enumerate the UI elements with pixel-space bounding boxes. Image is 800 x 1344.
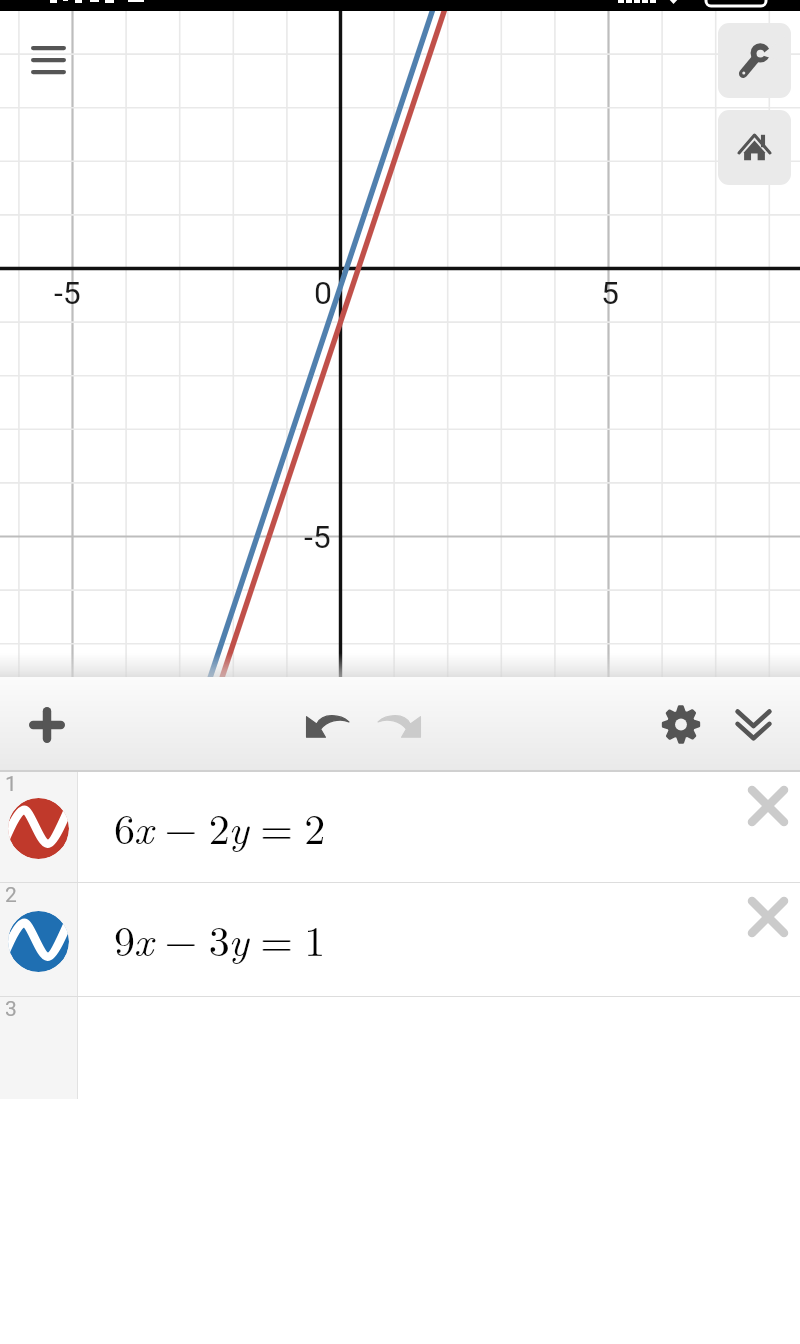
staticText: 0 xyxy=(314,274,332,312)
staticText: -5 xyxy=(54,274,81,312)
staticText: 6x − 2y = 2 xyxy=(114,797,324,857)
button[interactable]: Delete expression xyxy=(736,885,800,949)
button[interactable]: Add expression xyxy=(14,677,80,772)
button[interactable]: Delete expression xyxy=(736,774,800,838)
button[interactable]: Home xyxy=(718,110,791,185)
staticText: -5 xyxy=(304,518,331,556)
button[interactable]: 2 xyxy=(0,883,800,997)
button[interactable]: 3 xyxy=(0,997,78,1099)
button[interactable]: 1 xyxy=(0,772,800,883)
staticText: 5 xyxy=(601,274,619,312)
staticText: 3 xyxy=(5,997,17,1022)
staticText: 9x − 3y = 1 xyxy=(114,909,324,969)
button[interactable]: Menu xyxy=(16,28,80,92)
button[interactable]: Redo xyxy=(367,677,433,772)
button[interactable]: Collapse keypad xyxy=(720,677,786,772)
button[interactable]: Undo xyxy=(294,677,360,772)
staticText: 2 xyxy=(5,883,17,908)
button[interactable]: Graph settings xyxy=(648,677,714,772)
button[interactable]: Graph settings xyxy=(718,23,791,98)
staticText: 1 xyxy=(5,772,17,797)
